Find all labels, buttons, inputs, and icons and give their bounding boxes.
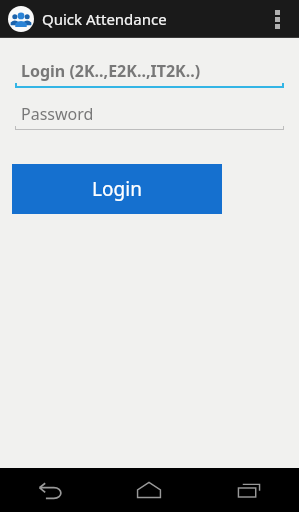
button[interactable]: Password <box>15 101 284 133</box>
button[interactable]: Login <box>12 164 222 214</box>
staticText: Login <box>92 176 142 202</box>
button[interactable]: More options <box>261 0 293 38</box>
staticText: Quick Attendance <box>42 9 167 29</box>
button[interactable]: Recent apps <box>199 468 299 512</box>
button[interactable]: Back <box>0 468 99 512</box>
button[interactable]: Home <box>99 468 199 512</box>
staticText: Login (2K..,E2K..,IT2K..) <box>21 60 201 82</box>
staticText: Password <box>21 103 94 125</box>
button[interactable]: Login (2K..,E2K..,IT2K..) <box>15 58 284 90</box>
